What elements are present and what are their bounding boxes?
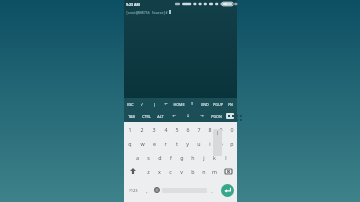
staticText: PGUP bbox=[213, 102, 223, 107]
button[interactable]: 1 bbox=[124, 122, 136, 136]
staticText: v bbox=[180, 168, 183, 175]
button[interactable]: z bbox=[142, 164, 154, 178]
staticText: . bbox=[211, 187, 213, 194]
staticText: p bbox=[230, 140, 234, 147]
button[interactable]: v bbox=[176, 164, 187, 178]
staticText: u bbox=[197, 140, 201, 147]
staticText: b bbox=[191, 168, 195, 175]
button[interactable]: 6 bbox=[182, 122, 193, 136]
staticText: 9:23 AM bbox=[126, 2, 140, 7]
staticText: k bbox=[213, 154, 216, 161]
button[interactable]: / bbox=[136, 98, 148, 110]
staticText: n bbox=[202, 168, 206, 175]
staticText: ALT bbox=[157, 114, 164, 119]
staticText: ?123 bbox=[129, 188, 138, 193]
staticText: TAB bbox=[128, 114, 135, 119]
button[interactable]: Hide keyboard bbox=[223, 110, 237, 122]
button[interactable]: 2 bbox=[136, 122, 148, 136]
staticText: 3 bbox=[152, 126, 156, 133]
staticText: 8 bbox=[208, 126, 212, 133]
button[interactable]: n bbox=[198, 164, 209, 178]
button[interactable]: r bbox=[160, 136, 171, 150]
staticText: FN bbox=[228, 102, 233, 107]
button[interactable]: b bbox=[187, 164, 198, 178]
button[interactable]: d bbox=[154, 150, 165, 164]
button[interactable]: ← bbox=[160, 98, 172, 110]
button[interactable]: , bbox=[142, 178, 152, 202]
button[interactable]: TAB bbox=[124, 110, 139, 122]
button[interactable]: p bbox=[226, 136, 237, 150]
button[interactable]: u bbox=[193, 136, 204, 150]
staticText: CTRL bbox=[142, 114, 151, 119]
button[interactable]: k bbox=[209, 150, 220, 164]
button[interactable]: ↑ bbox=[185, 98, 198, 110]
button[interactable]: m bbox=[209, 164, 220, 178]
button[interactable]: Switch language bbox=[152, 178, 162, 202]
staticText: c bbox=[169, 168, 172, 175]
button[interactable]: FN bbox=[224, 98, 237, 110]
button[interactable]: c bbox=[165, 164, 176, 178]
staticText: [root@NH8766 Source]# bbox=[126, 10, 168, 14]
button[interactable]: | bbox=[148, 98, 160, 110]
staticText: ← bbox=[172, 114, 176, 118]
button[interactable]: ← bbox=[167, 110, 181, 122]
button[interactable]: q bbox=[124, 136, 136, 150]
button[interactable]: 3 bbox=[148, 122, 160, 136]
staticText: j bbox=[203, 154, 205, 161]
button[interactable]: 0 bbox=[226, 122, 237, 136]
staticText: ↑ bbox=[190, 102, 194, 106]
button[interactable]: y bbox=[182, 136, 193, 150]
button[interactable]: END bbox=[198, 98, 211, 110]
staticText: 1 bbox=[128, 126, 132, 133]
staticText: ESC bbox=[127, 102, 134, 107]
button[interactable]: ALT bbox=[153, 110, 167, 122]
button[interactable]: t bbox=[171, 136, 182, 150]
button[interactable]: PGDN bbox=[209, 110, 223, 122]
button[interactable]: ?123 bbox=[124, 178, 142, 202]
button[interactable]: o bbox=[215, 136, 226, 150]
button[interactable]: e bbox=[148, 136, 160, 150]
button[interactable]: 8 bbox=[204, 122, 215, 136]
button[interactable]: 5 bbox=[171, 122, 182, 136]
staticText: h bbox=[191, 154, 195, 161]
button[interactable]: j bbox=[198, 150, 209, 164]
button[interactable]: Shift bbox=[124, 164, 142, 178]
staticText: l bbox=[217, 130, 219, 137]
staticText: 2 bbox=[140, 126, 144, 133]
button[interactable]: → bbox=[195, 110, 209, 122]
staticText: | bbox=[153, 102, 156, 107]
button[interactable]: ↓ bbox=[181, 110, 195, 122]
button[interactable]: HOME bbox=[172, 98, 185, 110]
button[interactable]: a bbox=[131, 150, 143, 164]
button[interactable]: i bbox=[204, 136, 215, 150]
staticText: x bbox=[158, 168, 161, 175]
button[interactable]: Enter bbox=[217, 178, 237, 202]
staticText: r bbox=[164, 140, 167, 147]
button[interactable]: ESC bbox=[124, 98, 136, 110]
staticText: 9 bbox=[219, 126, 223, 133]
staticText: HOME bbox=[173, 102, 185, 107]
button[interactable]: f bbox=[165, 150, 176, 164]
button[interactable]: h bbox=[187, 150, 198, 164]
staticText: d bbox=[158, 154, 162, 161]
button[interactable]: CTRL bbox=[139, 110, 153, 122]
button[interactable]: 7 bbox=[193, 122, 204, 136]
staticText: s bbox=[147, 154, 150, 161]
button[interactable]: 4 bbox=[160, 122, 171, 136]
button[interactable]: x bbox=[154, 164, 165, 178]
button[interactable]: g bbox=[176, 150, 187, 164]
staticText: 0 bbox=[230, 126, 234, 133]
staticText: ← bbox=[164, 102, 168, 106]
staticText: z bbox=[147, 168, 150, 175]
button[interactable]: l bbox=[220, 150, 231, 164]
staticText: w bbox=[140, 140, 145, 147]
button[interactable]: w bbox=[136, 136, 148, 150]
button[interactable] bbox=[162, 182, 207, 198]
button[interactable]: s bbox=[143, 150, 154, 164]
staticText: PGDN bbox=[211, 114, 222, 119]
button[interactable]: PGUP bbox=[211, 98, 224, 110]
staticText: → bbox=[200, 114, 204, 118]
button[interactable]: 9 bbox=[215, 122, 226, 136]
button[interactable]: Backspace bbox=[220, 164, 237, 178]
